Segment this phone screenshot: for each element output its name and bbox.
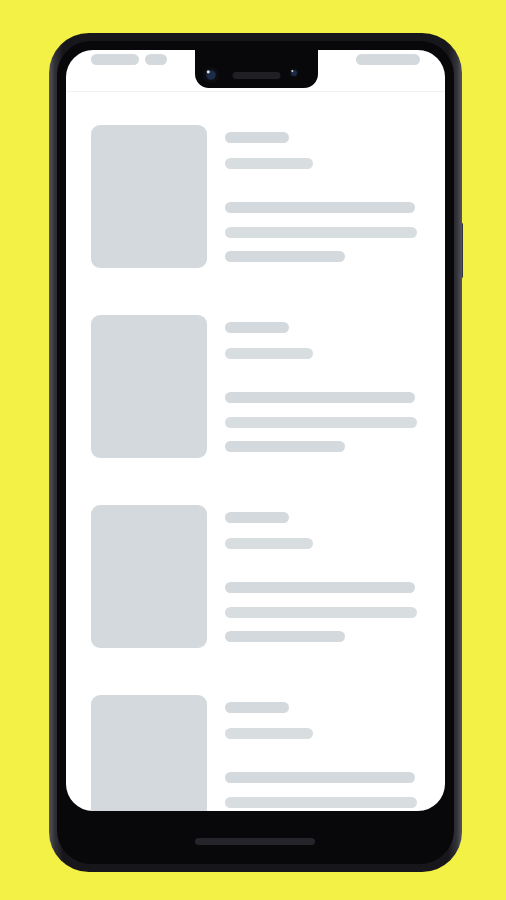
button[interactable] xyxy=(86,689,425,811)
button[interactable] xyxy=(86,309,425,464)
button[interactable] xyxy=(86,499,425,654)
button[interactable] xyxy=(86,119,425,274)
button[interactable]: Power xyxy=(454,222,463,279)
button[interactable]: Volume xyxy=(454,338,462,435)
